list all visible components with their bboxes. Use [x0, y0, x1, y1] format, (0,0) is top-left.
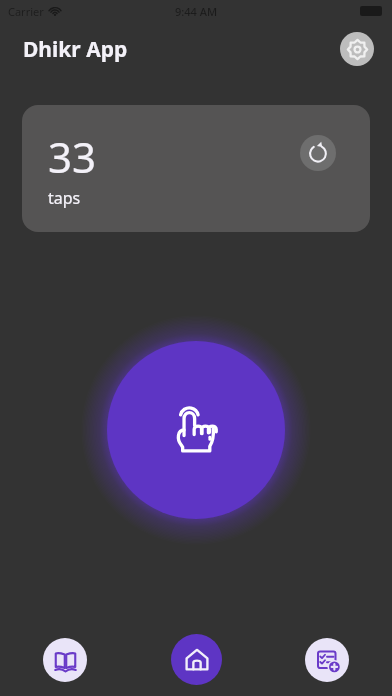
button[interactable]: Library	[43, 638, 87, 682]
staticText: 9:44 AM	[175, 4, 218, 19]
button[interactable]: Reset counter	[300, 135, 336, 171]
staticText: Carrier	[8, 4, 44, 19]
staticText: taps	[48, 187, 81, 209]
staticText: Dhikr App	[23, 35, 128, 64]
staticText: 33	[48, 128, 97, 185]
button[interactable]: Settings	[340, 32, 374, 66]
button[interactable]: 33	[22, 105, 370, 232]
button[interactable]: Add dhikr	[305, 638, 349, 682]
button[interactable]: Tap to count	[107, 341, 285, 519]
button[interactable]: Home	[171, 634, 222, 685]
